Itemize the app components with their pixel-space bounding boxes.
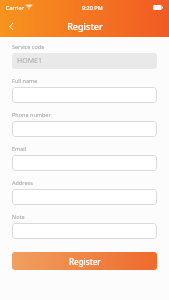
button[interactable] xyxy=(12,155,157,171)
button[interactable] xyxy=(12,189,157,205)
staticText: Register xyxy=(69,256,101,267)
button[interactable] xyxy=(12,223,157,239)
staticText: Address xyxy=(12,179,33,186)
staticText: 9:20 PM xyxy=(82,4,103,11)
staticText: Carrier xyxy=(6,4,24,11)
staticText: Phone number xyxy=(12,111,51,118)
staticText: Email xyxy=(12,145,27,152)
button[interactable] xyxy=(12,87,157,103)
staticText: HOME1 xyxy=(17,56,42,66)
staticText: Register xyxy=(67,20,103,32)
staticText: Full name xyxy=(12,77,38,84)
button[interactable]: Back xyxy=(0,15,22,37)
staticText: Service code xyxy=(12,43,45,50)
button[interactable]: Register xyxy=(12,252,157,270)
button[interactable] xyxy=(12,121,157,137)
staticText: Note xyxy=(12,213,25,220)
button[interactable]: HOME1 xyxy=(12,53,157,69)
